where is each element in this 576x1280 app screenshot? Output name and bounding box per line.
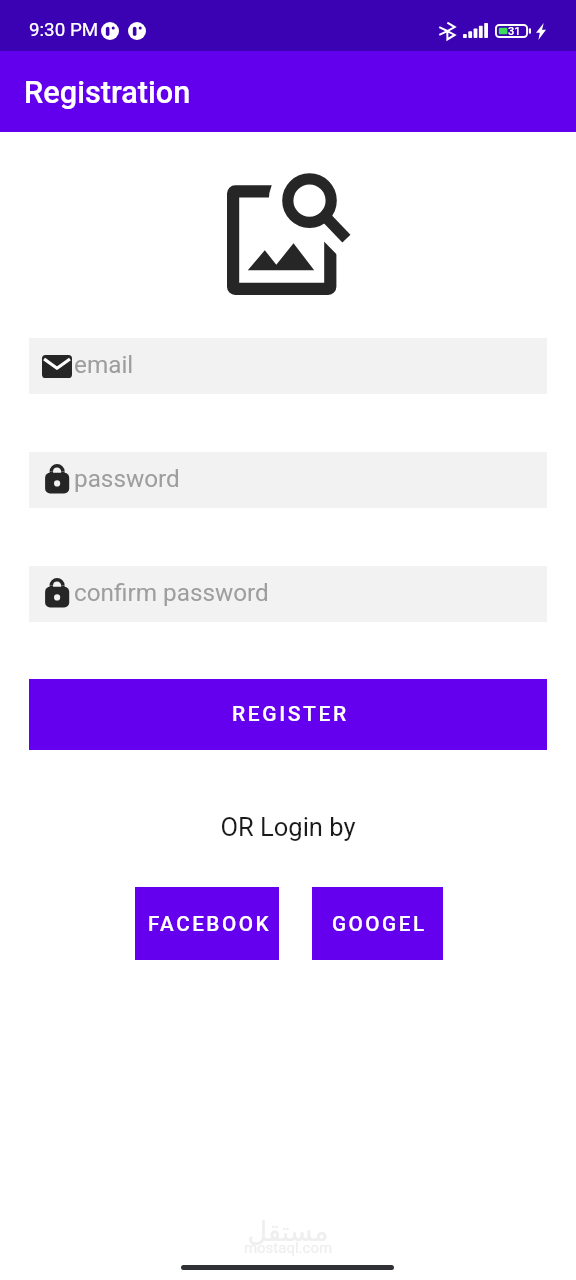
other: Signal strength <box>463 23 488 38</box>
button[interactable]: GOOGEL <box>312 887 443 960</box>
button[interactable]: Password <box>29 566 547 622</box>
other: Email <box>42 355 72 378</box>
button[interactable]: Password <box>29 452 547 508</box>
staticText: FACEBOOK <box>148 912 271 936</box>
staticText: email <box>74 350 134 378</box>
staticText: OR Login by <box>0 812 576 842</box>
other: Password <box>42 464 72 496</box>
staticText: 9:30 PM <box>29 19 99 41</box>
staticText: 31 <box>508 25 521 38</box>
other: Password <box>42 578 72 610</box>
staticText: REGISTER <box>232 702 349 727</box>
button[interactable]: REGISTER <box>29 679 547 750</box>
staticText: confirm password <box>74 578 269 606</box>
other: Charging <box>536 23 546 40</box>
other: Image search <box>227 173 351 296</box>
staticText: GOOGEL <box>332 912 427 936</box>
button[interactable]: Email <box>29 338 547 394</box>
other: Battery 31 percent <box>495 24 531 38</box>
staticText: Registration <box>24 75 191 111</box>
button[interactable]: FACEBOOK <box>135 887 279 960</box>
other: Bluetooth <box>438 22 456 40</box>
staticText: mostaql.com <box>0 1239 576 1257</box>
staticText: password <box>74 464 180 492</box>
